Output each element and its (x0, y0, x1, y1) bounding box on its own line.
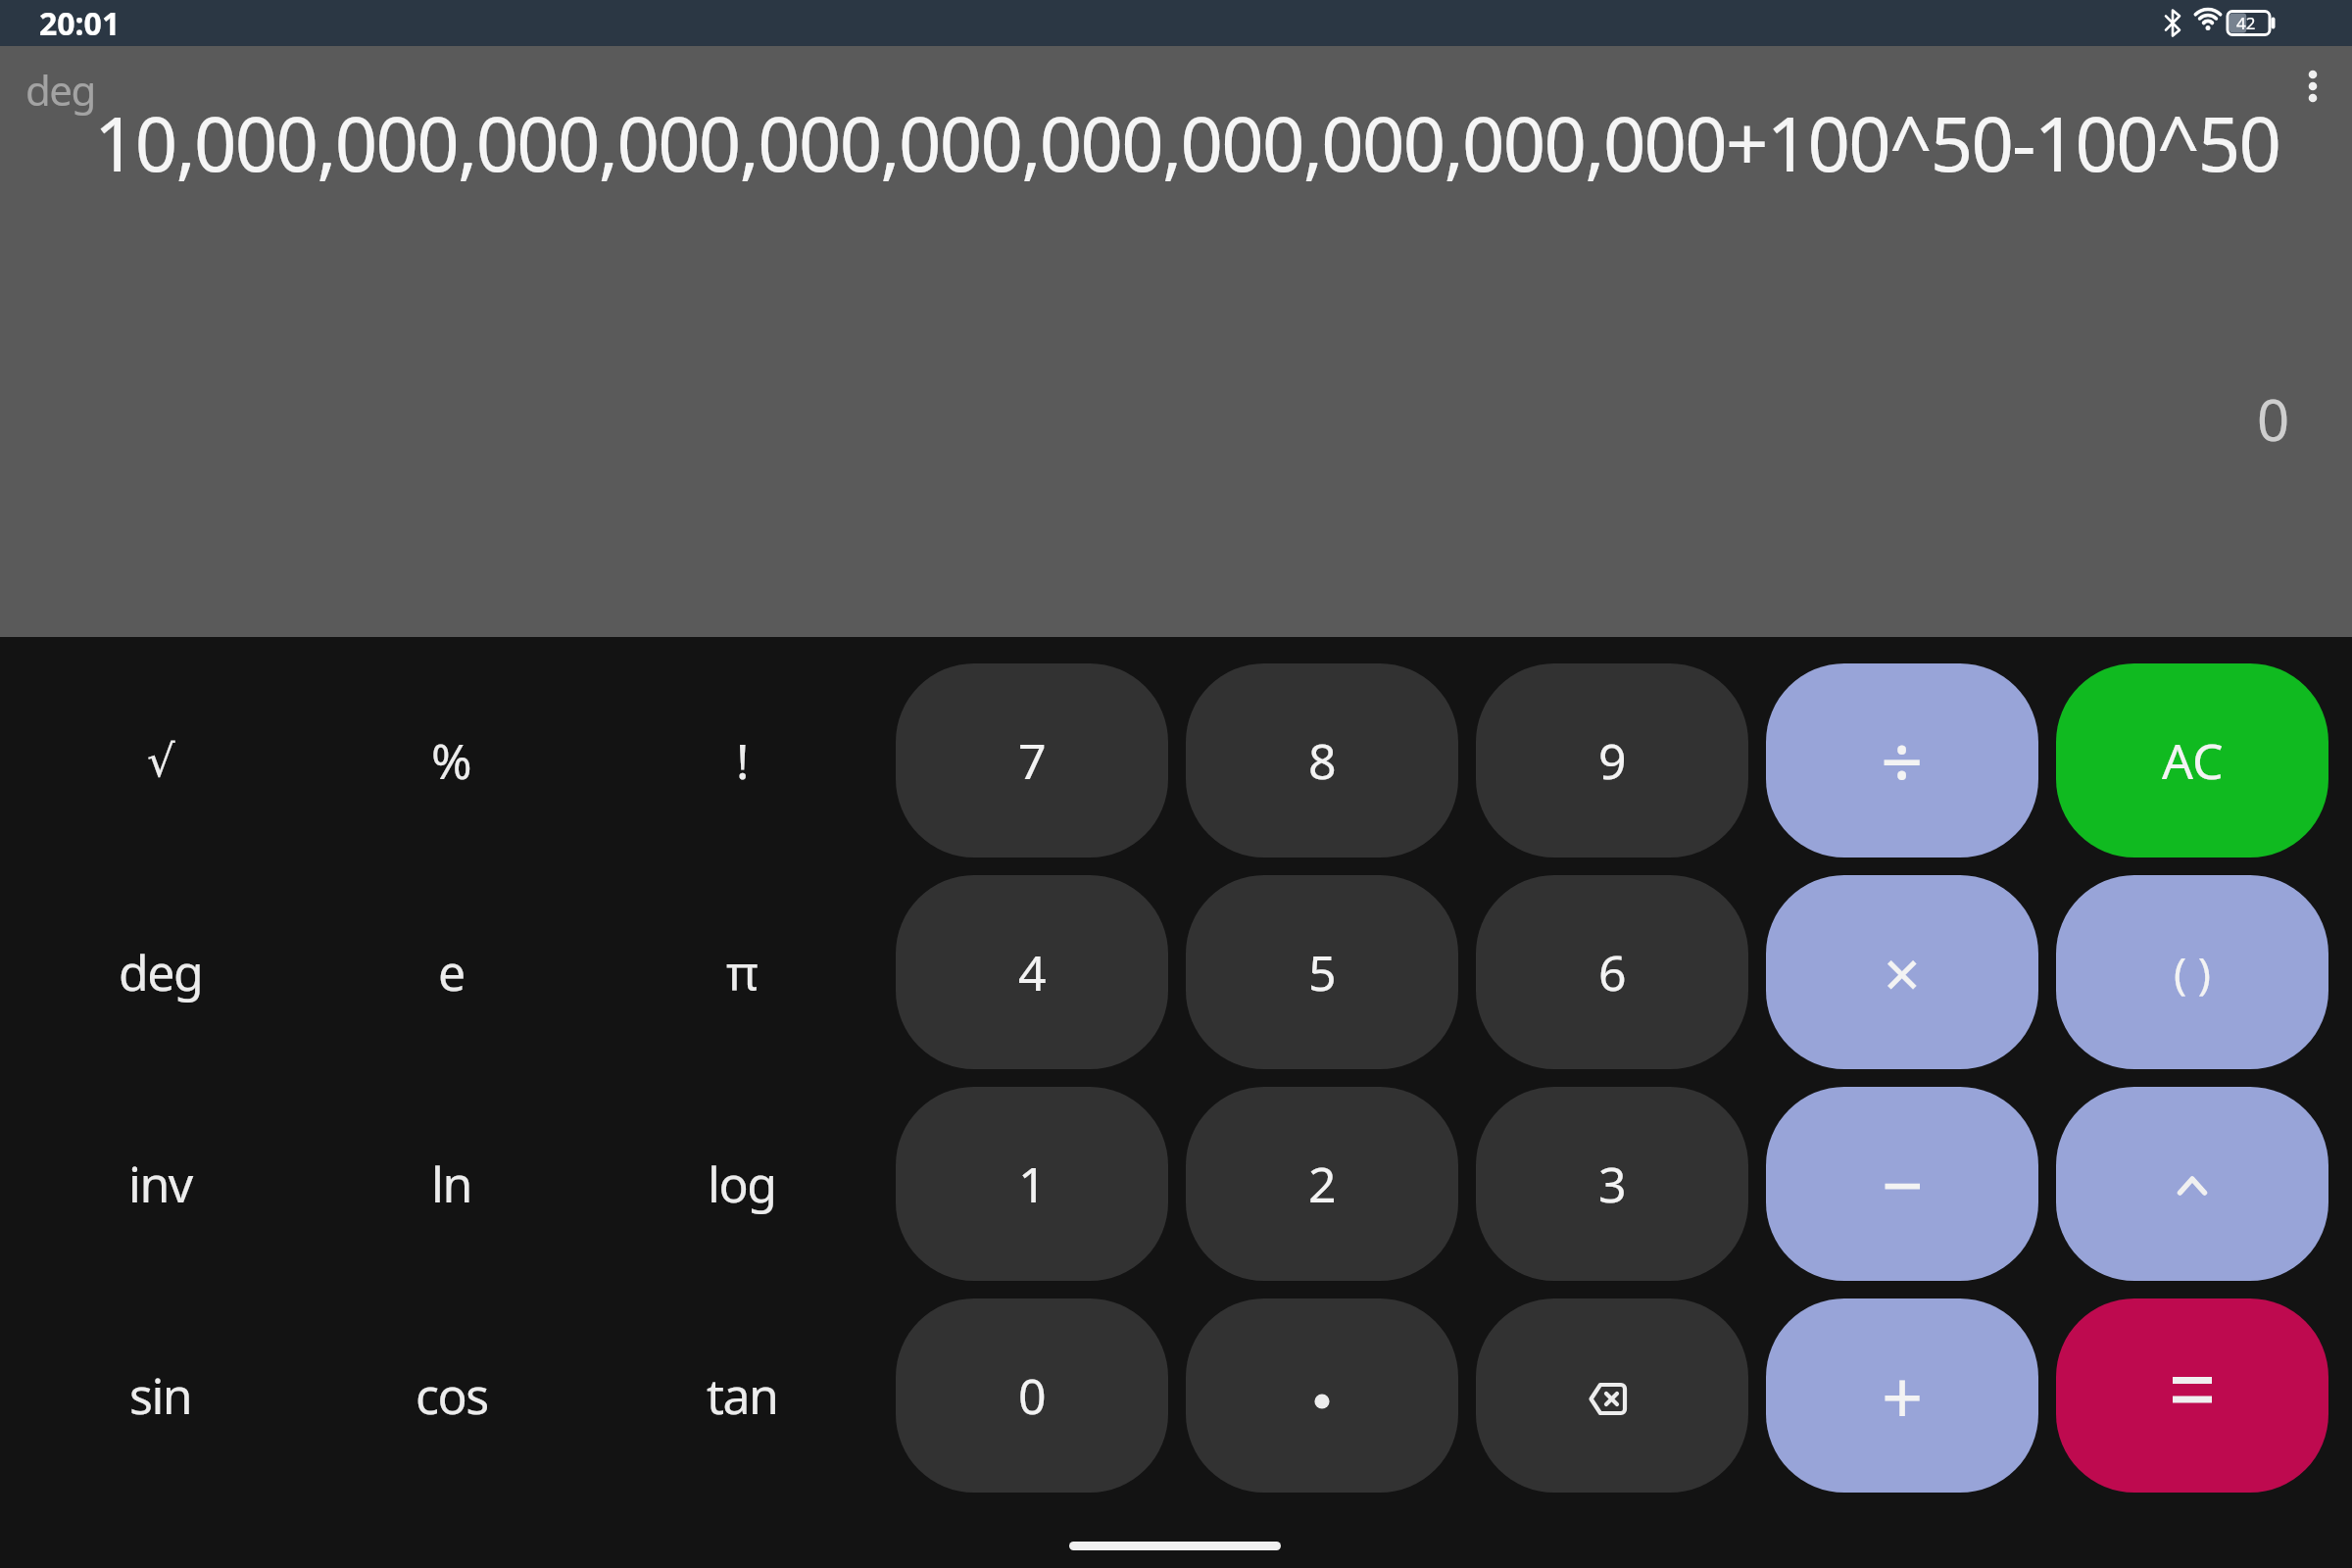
staticText: × (1884, 928, 1921, 1016)
button[interactable]: − (1766, 1087, 2038, 1281)
button[interactable]: ( ) (2056, 875, 2328, 1069)
staticText: 8 (1308, 727, 1337, 794)
button[interactable]: sin (15, 1298, 306, 1493)
button[interactable]: 0 (896, 1298, 1168, 1493)
button[interactable]: deg (15, 875, 306, 1069)
button[interactable]: 6 (1476, 875, 1748, 1069)
button[interactable]: 1 (896, 1087, 1168, 1281)
staticText: 42 (2236, 12, 2256, 34)
staticText: 3 (1598, 1151, 1627, 1217)
button[interactable] (2056, 1298, 2328, 1493)
button[interactable] (1476, 1298, 1748, 1493)
staticText: 2 (1308, 1151, 1337, 1217)
button[interactable]: × (1766, 875, 2038, 1069)
button[interactable]: tan (597, 1298, 887, 1493)
staticText: ! (736, 727, 748, 794)
staticText: 4 (1018, 939, 1047, 1005)
staticText: 10,000,000,000,000,000,000,000,000,000,0… (94, 92, 2280, 194)
button[interactable]: 9 (1476, 663, 1748, 857)
staticText: − (1882, 1134, 1924, 1234)
button[interactable]: 4 (896, 875, 1168, 1069)
button[interactable]: inv (15, 1087, 306, 1281)
button[interactable]: + (1766, 1298, 2038, 1493)
staticText: deg (119, 939, 203, 1005)
staticText: e (438, 939, 465, 1005)
button[interactable]: 7 (896, 663, 1168, 857)
button[interactable]: log (597, 1087, 887, 1281)
button[interactable] (2274, 46, 2352, 203)
staticText: 9 (1598, 727, 1627, 794)
staticText: log (708, 1151, 776, 1217)
button[interactable]: ÷ (1766, 663, 2038, 857)
staticText: 0 (2257, 380, 2290, 458)
button[interactable]: 8 (1186, 663, 1458, 857)
button[interactable]: cos (306, 1298, 597, 1493)
button[interactable]: ln (306, 1087, 597, 1281)
staticText: % (431, 727, 471, 794)
staticText: 7 (1018, 727, 1047, 794)
button[interactable]: 3 (1476, 1087, 1748, 1281)
staticText: deg (25, 62, 95, 118)
button[interactable] (1186, 1298, 1458, 1493)
staticText: ln (431, 1151, 471, 1217)
button[interactable]: % (306, 663, 597, 857)
staticText: inv (128, 1151, 192, 1217)
staticText: π (726, 939, 758, 1005)
button[interactable]: √ (15, 663, 306, 857)
button[interactable]: π (597, 875, 887, 1069)
button[interactable]: e (306, 875, 597, 1069)
staticText: AC (2162, 727, 2224, 794)
staticText: + (1882, 1347, 1924, 1445)
button[interactable]: AC (2056, 663, 2328, 857)
staticText: 1 (1018, 1151, 1047, 1217)
button[interactable]: 2 (1186, 1087, 1458, 1281)
staticText: √ (147, 735, 174, 786)
staticText: 20:01 (39, 2, 121, 45)
button[interactable] (2056, 1087, 2328, 1281)
staticText: 6 (1598, 939, 1627, 1005)
button[interactable]: ! (597, 663, 887, 857)
staticText: ( ) (2174, 943, 2211, 1002)
staticText: tan (707, 1362, 778, 1429)
button[interactable]: 5 (1186, 875, 1458, 1069)
staticText: sin (129, 1362, 192, 1429)
staticText: 5 (1308, 939, 1337, 1005)
staticText: cos (416, 1362, 488, 1429)
staticText: ÷ (1881, 710, 1924, 811)
staticText: 0 (1018, 1362, 1047, 1429)
